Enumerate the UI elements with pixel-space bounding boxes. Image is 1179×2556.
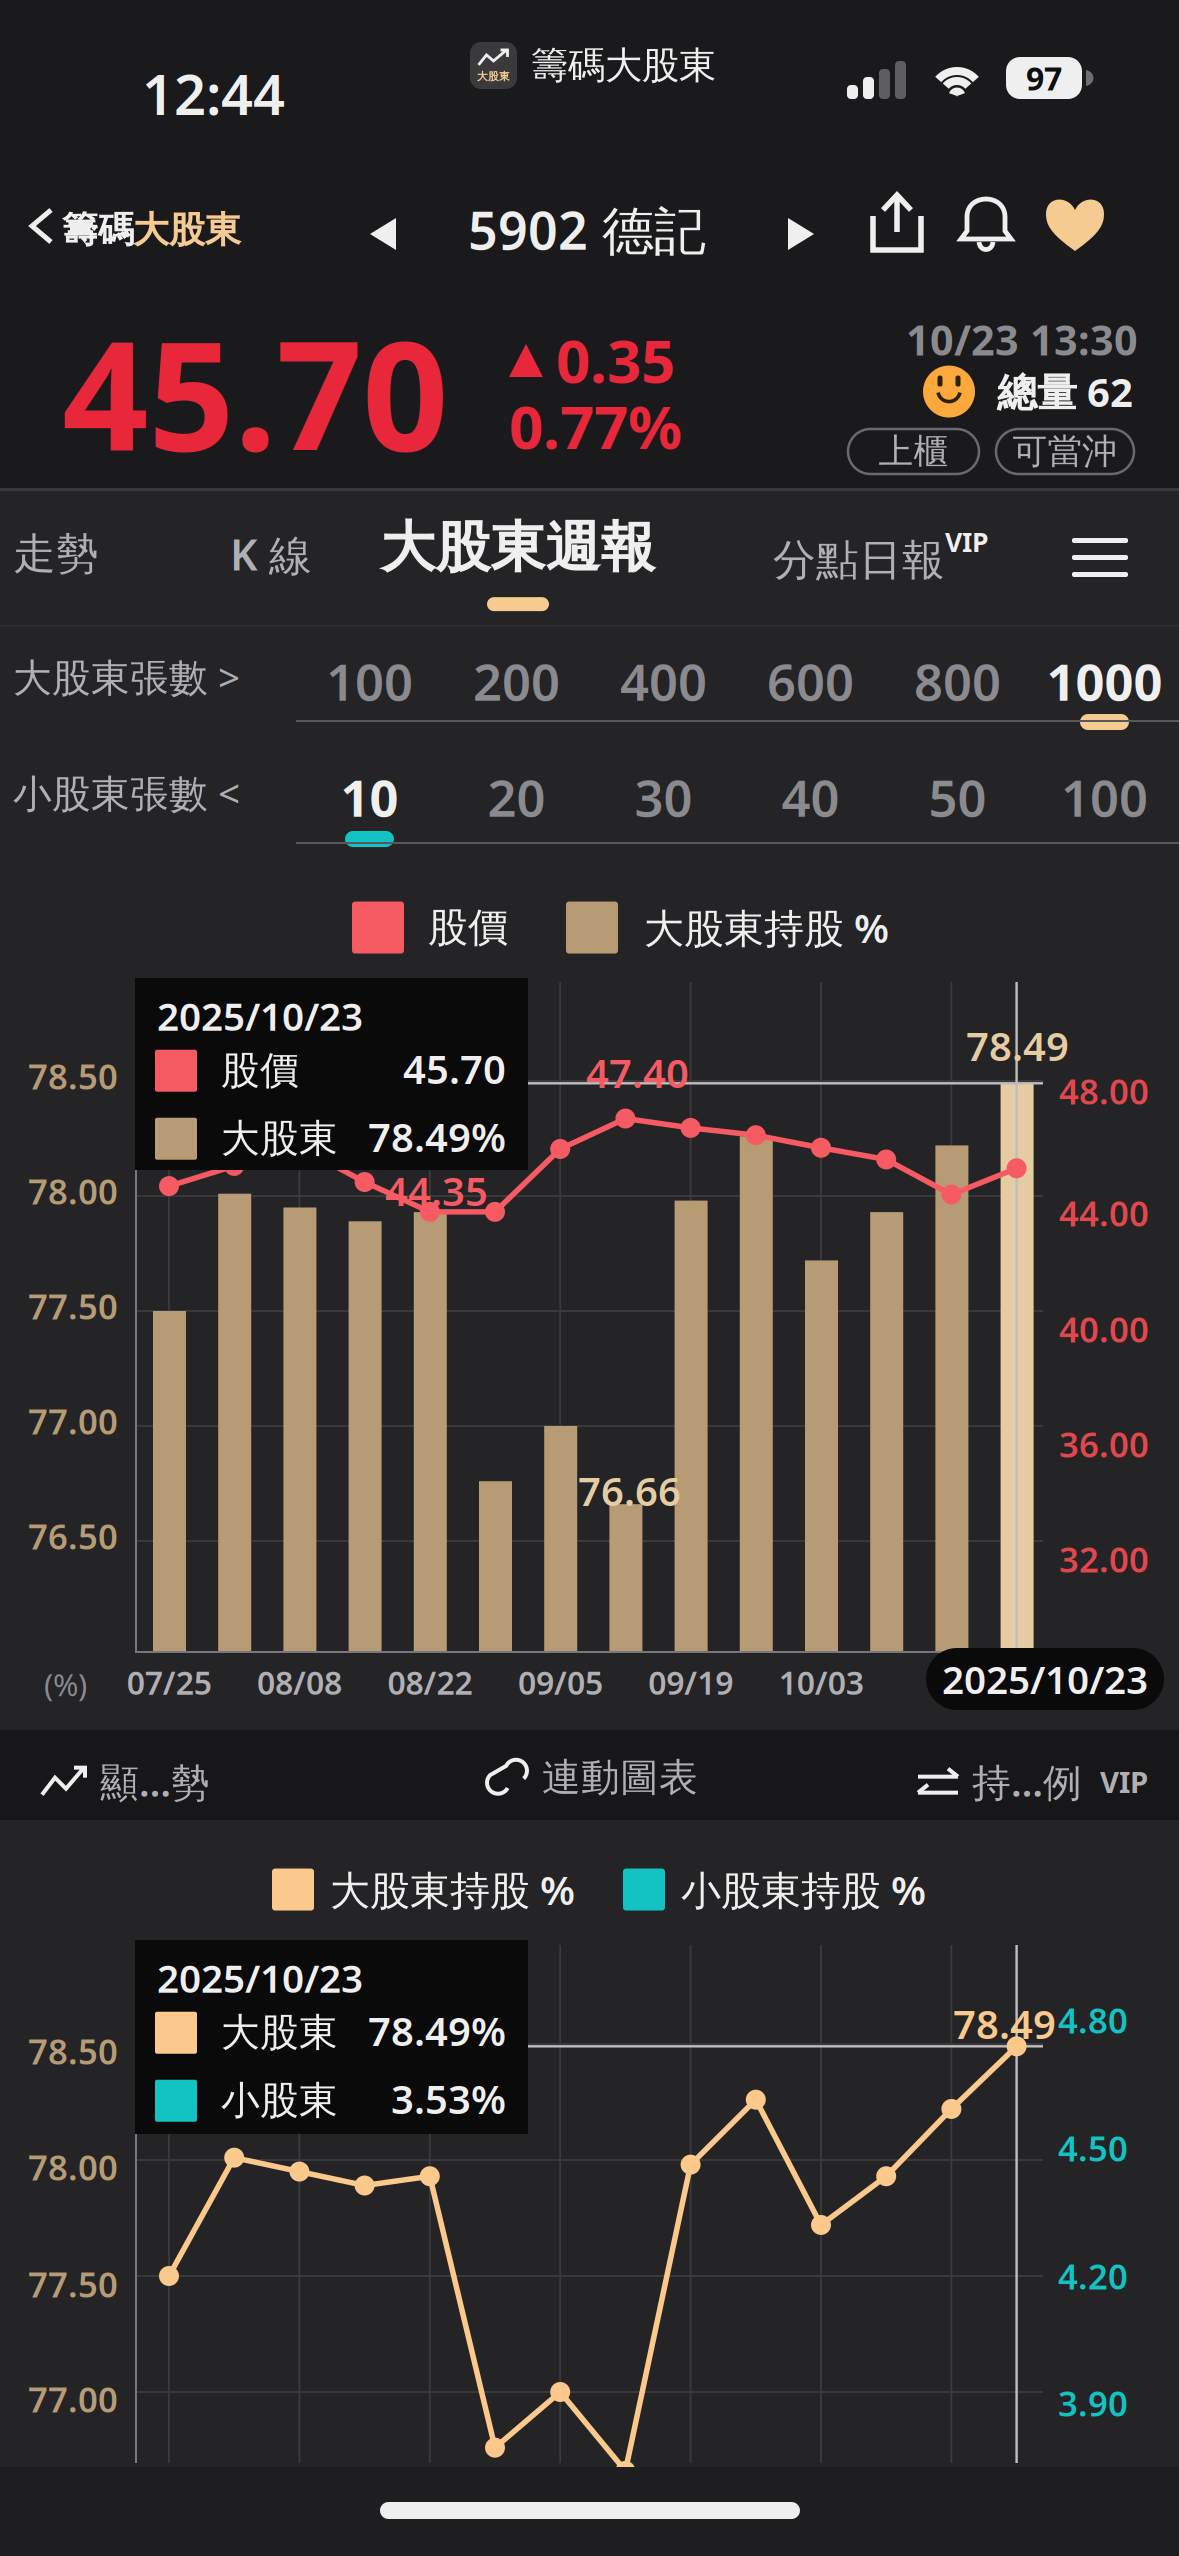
button[interactable]: Previous stock [350,198,416,270]
button[interactable]: 大股東週報 [353,496,683,639]
staticText: 大股東 [221,2009,338,2056]
staticText: 48.00 [1059,1068,1149,1114]
button[interactable]: 10 [296,761,443,833]
button[interactable]: Next stock [768,198,834,270]
staticText: K 線 [230,526,312,582]
button[interactable]: 800 [884,645,1031,717]
staticText: 籌碼 [62,208,134,252]
staticText: 36.00 [1059,1421,1149,1467]
staticText: 籌碼大股東 [531,43,716,88]
button[interactable]: 600 [737,645,884,717]
staticText: 78.50 [28,2028,118,2074]
button[interactable]: Price alerts [956,192,1016,254]
staticText: 76.66 [578,1464,681,1517]
staticText: 走勢 [13,528,99,580]
button[interactable]: 40 [737,761,884,833]
button[interactable]: K 線 [197,498,345,610]
staticText: 3.90 [1058,2380,1128,2426]
staticText: 45.70 [62,292,448,492]
staticText: 200 [473,647,560,715]
button[interactable]: 顯…勢 [28,1742,224,1821]
button[interactable]: 50 [884,761,1031,833]
staticText: 100 [326,647,413,715]
button[interactable]: 持…例 [900,1742,1162,1821]
staticText: 大股東週報 [380,514,655,581]
staticText: VIP [1100,1762,1148,1801]
staticText: 上櫃 [878,430,948,473]
staticText: 股價 [428,903,508,952]
staticText: 總量 62 [997,365,1133,418]
staticText: 大股東 [133,208,241,252]
button[interactable]: 分點日報 [763,500,999,610]
staticText: 78.49 [953,1997,1056,2050]
staticText: 77.00 [28,1398,118,1444]
staticText: 3.53% [391,2072,506,2125]
button[interactable]: 走勢 [0,498,130,610]
staticText: 76.50 [28,1513,118,1559]
staticText: 50 [928,763,986,831]
staticText: 400 [620,647,707,715]
button[interactable] [0,186,270,266]
staticText: 10/03 [779,1661,864,1703]
staticText: 78.49 [966,1019,1069,1072]
staticText: 10/23 13:30 [906,312,1138,367]
staticText: 4.80 [1058,1997,1128,2043]
staticText: 97 [1026,57,1062,99]
staticText: 股價 [221,1047,299,1094]
staticText: 77.50 [28,1283,118,1329]
staticText: 4.20 [1058,2253,1128,2299]
staticText: 連動圖表 [542,1754,698,1801]
staticText: 2025/10/23 [942,1653,1148,1705]
staticText: 600 [767,647,854,715]
staticText: 32.00 [1059,1536,1149,1582]
staticText: 10 [340,763,398,831]
staticText: 20 [487,763,545,831]
staticText: 分點日報 [773,534,945,586]
button[interactable]: 100 [1031,761,1178,833]
staticText: 09/19 [648,1661,733,1703]
staticText: 5902 德記 [468,195,706,264]
staticText: 顯…勢 [100,1756,210,1807]
staticText: 大股東持股 % [330,1863,575,1916]
staticText: 4.50 [1058,2125,1128,2171]
staticText: 77.50 [28,2261,118,2307]
button[interactable]: Share [866,192,928,254]
staticText: 76.66 [578,2490,681,2543]
button[interactable]: 400 [590,645,737,717]
staticText: (%) [44,1664,87,1705]
staticText: 07/25 [127,1661,212,1703]
staticText: 2025/10/23 [157,1952,363,2003]
staticText: 40.00 [1059,1306,1149,1352]
staticText: 800 [914,647,1001,715]
staticText: 小股東持股 % [681,1863,926,1916]
button[interactable]: 30 [590,761,737,833]
staticText: 08/22 [387,1661,472,1703]
button[interactable]: 200 [443,645,590,717]
staticText: VIP [945,524,989,559]
button[interactable]: 100 [296,645,443,717]
staticText: 2025/10/23 [157,990,363,1041]
staticText: 78.00 [28,1168,118,1214]
staticText: 1000 [1046,647,1162,715]
staticText: 持…例 [972,1756,1082,1807]
staticText: 可當沖 [1012,430,1117,473]
staticText: 30 [634,763,692,831]
staticText: 78.00 [28,2144,118,2190]
button[interactable]: Add to favourites [1044,194,1106,252]
staticText: 100 [1061,763,1148,831]
staticText: 09/05 [518,1661,603,1703]
staticText: 12:44 [142,56,285,130]
staticText: 0.77% [509,386,682,466]
button[interactable]: 連動圖表 [470,1740,712,1815]
staticText: 小股東張數 < [13,767,240,818]
button[interactable]: More options [1072,538,1128,577]
staticText: 44.35 [385,1164,488,1217]
staticText: 大股東 [477,70,510,83]
staticText: 大股東張數 > [13,651,240,702]
staticText: 45.70 [403,1042,506,1095]
button[interactable]: 1000 [1031,645,1178,717]
staticText: 08/08 [257,1661,342,1703]
staticText: 77.00 [28,2376,118,2422]
staticText: 78.49% [368,1110,506,1163]
button[interactable]: 20 [443,761,590,833]
